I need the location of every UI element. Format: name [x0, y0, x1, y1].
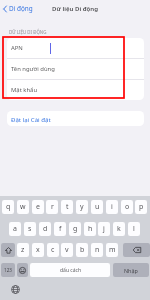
staticText: APN — [11, 44, 23, 52]
staticText: DỮ LIỆU DI ĐỘNG — [9, 29, 47, 35]
button[interactable]: r — [46, 200, 58, 214]
staticText: dấu cách — [60, 267, 81, 274]
button[interactable]: u — [91, 200, 103, 214]
staticText: x — [36, 245, 40, 255]
staticText: s — [28, 224, 32, 234]
staticText: p — [139, 202, 144, 212]
button[interactable]: Di động — [3, 4, 33, 13]
staticText: h — [88, 224, 93, 234]
staticText: m — [109, 245, 116, 255]
button[interactable]: c — [47, 243, 59, 257]
staticText: u — [95, 202, 100, 212]
staticText: i — [111, 202, 113, 212]
staticText: z — [21, 245, 25, 255]
button[interactable]: m — [106, 243, 118, 257]
button[interactable]: w — [17, 200, 29, 214]
button[interactable]: h — [84, 222, 96, 236]
button[interactable]: i — [106, 200, 118, 214]
button[interactable]: n — [91, 243, 103, 257]
button[interactable]: b — [76, 243, 88, 257]
staticText: Di động — [9, 4, 33, 13]
button[interactable]: Shift — [1, 243, 15, 257]
button[interactable]: d — [39, 222, 51, 236]
button[interactable]: 123 — [1, 263, 15, 277]
staticText: Đặt lại Cài đặt — [11, 115, 51, 123]
staticText: w — [20, 202, 26, 212]
button[interactable]: Tên người dùng — [7, 59, 144, 79]
button[interactable]: g — [69, 222, 81, 236]
staticText: Dữ liệu Di động — [52, 4, 99, 12]
staticText: n — [95, 245, 100, 255]
button[interactable]: Delete — [123, 243, 150, 257]
staticText: Tên người dùng — [11, 65, 55, 73]
staticText: r — [51, 202, 54, 212]
button[interactable]: l — [128, 222, 140, 236]
button[interactable]: z — [17, 243, 29, 257]
button[interactable]: Emoji — [17, 263, 28, 277]
staticText: q — [6, 202, 11, 212]
button[interactable]: dấu cách — [30, 263, 110, 277]
staticText: c — [51, 245, 55, 255]
staticText: d — [43, 224, 48, 234]
staticText: k — [117, 224, 121, 234]
button[interactable]: j — [98, 222, 110, 236]
button[interactable]: Đặt lại Cài đặt — [7, 111, 144, 126]
staticText: o — [125, 202, 130, 212]
button[interactable]: v — [61, 243, 73, 257]
button[interactable]: y — [76, 200, 88, 214]
button[interactable]: Nhập — [113, 263, 149, 277]
staticText: g — [73, 224, 78, 234]
button[interactable]: s — [24, 222, 36, 236]
button[interactable]: e — [32, 200, 44, 214]
staticText: Nhập — [124, 267, 138, 274]
staticText: t — [66, 202, 69, 212]
staticText: b — [80, 245, 85, 255]
button[interactable]: p — [135, 200, 147, 214]
staticText: l — [133, 224, 135, 234]
button[interactable]: Mật khẩu — [7, 80, 144, 100]
button[interactable]: k — [113, 222, 125, 236]
staticText: Mật khẩu — [11, 86, 38, 94]
button[interactable]: x — [32, 243, 44, 257]
staticText: e — [36, 202, 40, 212]
staticText: y — [80, 202, 84, 212]
staticText: f — [59, 224, 62, 234]
staticText: a — [13, 224, 17, 234]
button[interactable]: APN — [7, 38, 144, 58]
button[interactable]: a — [9, 222, 21, 236]
button[interactable]: Change keyboard language — [11, 285, 20, 294]
button[interactable]: f — [54, 222, 66, 236]
staticText: v — [65, 245, 69, 255]
button[interactable]: o — [121, 200, 133, 214]
button[interactable]: q — [2, 200, 14, 214]
button[interactable]: t — [61, 200, 73, 214]
staticText: 123 — [4, 267, 12, 273]
staticText: j — [103, 224, 105, 234]
